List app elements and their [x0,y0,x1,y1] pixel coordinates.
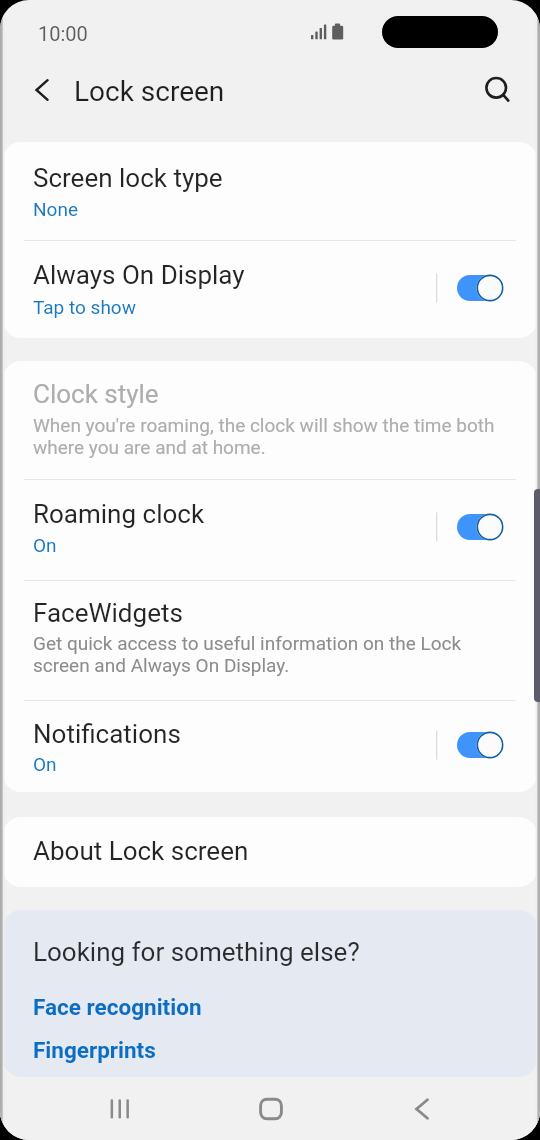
staticText: FaceWidgets [33,598,183,628]
button[interactable]: Toggle [436,730,504,760]
staticText: Face recognition [33,994,202,1020]
staticText: Tap to show [33,296,136,318]
staticText: Always On Display [33,260,245,290]
staticText: Roaming clock [33,499,205,529]
staticText: None [33,198,78,220]
button[interactable] [3,479,537,580]
staticText: Lock screen [74,75,225,108]
staticText: 10:00 [38,22,88,45]
staticText: Notifications [33,719,181,749]
staticText: About Lock screen [33,836,249,866]
button[interactable] [3,581,537,700]
staticText: Clock style [33,379,159,409]
staticText: Screen lock type [33,163,223,193]
button[interactable]: Recent apps [90,1085,150,1133]
button[interactable]: Home [241,1085,301,1133]
button[interactable] [21,986,241,1026]
button[interactable]: Navigate up [19,67,65,113]
staticText: Fingerprints [33,1037,156,1063]
button[interactable]: Toggle [436,273,504,303]
staticText: When you're roaming, the clock will show… [33,415,511,459]
staticText: Looking for something else? [33,937,360,967]
button[interactable]: Back [392,1085,452,1133]
staticText: On [33,753,57,775]
staticText: On [33,534,57,556]
button[interactable] [3,817,537,887]
button[interactable] [3,241,537,338]
staticText: Get quick access to useful information o… [33,633,475,677]
button[interactable]: Search [473,66,519,112]
button[interactable] [3,142,537,240]
button[interactable]: Toggle [436,512,504,542]
button[interactable] [21,1029,241,1069]
button[interactable] [3,701,537,792]
